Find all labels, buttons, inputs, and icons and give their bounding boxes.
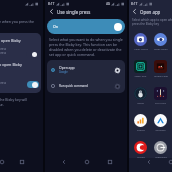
staticText: Select what you want to do when you sing…	[49, 37, 123, 42]
button[interactable]: Recents	[104, 156, 115, 167]
button[interactable]: Back	[47, 7, 56, 16]
staticText: press the Bixby key	[132, 22, 159, 26]
staticText: Airport	[137, 155, 145, 158]
staticText: se.	[0, 102, 4, 107]
button[interactable]: Game	[131, 87, 150, 104]
button[interactable]: Toggle Bixby key	[27, 81, 39, 88]
button[interactable]: Bixby Vision	[151, 33, 170, 50]
staticText: press	[0, 81, 7, 85]
staticText: Select which app to open when you	[132, 18, 172, 22]
button[interactable]: Airport	[131, 141, 150, 158]
staticText: press the Bixby key. This function can b…	[49, 42, 117, 47]
button[interactable]: Slideshare	[151, 141, 170, 158]
staticText: Bixby Vision	[154, 47, 168, 50]
staticText: Fitatoo	[137, 128, 145, 131]
staticText: Star Wars	[155, 101, 166, 104]
button[interactable]: Open app	[47, 60, 125, 79]
button[interactable]: Home	[0, 156, 7, 167]
staticText: the Bixby key will	[0, 97, 28, 102]
button[interactable]: On	[47, 19, 125, 34]
button[interactable]: Settings	[112, 65, 122, 75]
button[interactable]: Toggle wake with voice	[26, 50, 38, 58]
button[interactable]: Home	[81, 156, 92, 167]
button[interactable]: Settings	[112, 81, 122, 91]
staticText: o open Bixby	[0, 62, 23, 67]
staticText: Slideshare	[155, 155, 167, 158]
staticText: On	[53, 24, 59, 29]
staticText: Run quick command	[59, 84, 112, 88]
staticText: e when you press the	[0, 19, 34, 24]
staticText: Video Tour	[134, 74, 147, 77]
staticText: press	[0, 51, 7, 55]
button[interactable]: Video Tour	[131, 60, 150, 77]
staticText: 8:17	[131, 2, 138, 6]
staticText: 4G	[106, 2, 110, 6]
staticText: open Bixby	[1, 38, 21, 43]
button[interactable]: Back	[143, 156, 154, 167]
button[interactable]: Back	[130, 7, 139, 16]
staticText: Open app	[59, 65, 75, 70]
staticText: set app or quick command.	[49, 52, 95, 57]
staticText: disabled when you delete or deactivate t…	[49, 47, 122, 52]
button[interactable]: Home	[165, 156, 172, 167]
staticText: press	[0, 47, 7, 51]
button[interactable]: Run quick command	[47, 79, 125, 93]
staticText: Mobile Page	[154, 74, 168, 77]
button[interactable]: Mobile Page	[151, 60, 170, 77]
button[interactable]: Star Wars	[151, 87, 170, 104]
button[interactable]: Back	[58, 156, 69, 167]
staticText: Open app	[140, 9, 161, 15]
staticText: Optimize	[155, 128, 166, 131]
button[interactable]: Optimize	[151, 114, 170, 131]
button[interactable]: Recents	[16, 156, 27, 167]
staticText: Color Works	[134, 47, 148, 50]
staticText: 8:17	[48, 2, 55, 6]
staticText: Use single press	[57, 9, 91, 15]
button[interactable]: Fitatoo	[131, 114, 150, 131]
button[interactable]: Color Works	[131, 33, 150, 50]
staticText: Game	[137, 101, 144, 104]
staticText: Google	[59, 70, 68, 74]
